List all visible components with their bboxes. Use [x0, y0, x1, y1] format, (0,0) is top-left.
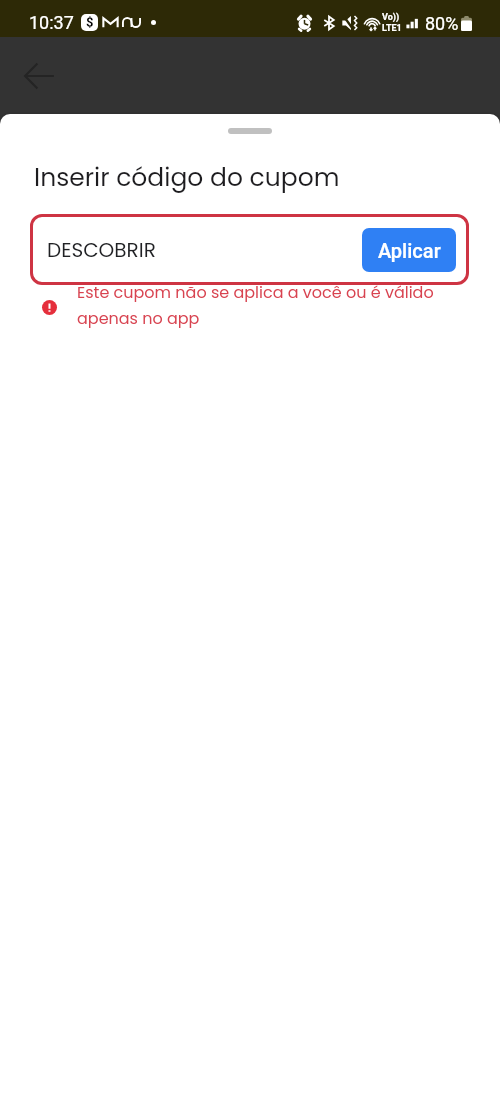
staticText: Inserir código do cupom — [34, 160, 340, 195]
staticText: $ — [86, 15, 94, 30]
staticText: 80% — [425, 13, 459, 34]
button[interactable]: Aplicar — [362, 228, 456, 272]
staticText: Vo)) — [382, 12, 400, 23]
staticText: Aplicar — [378, 239, 441, 262]
button[interactable]: Back — [14, 51, 64, 101]
staticText: 10:37 — [29, 12, 74, 33]
staticText: DESCOBRIR — [47, 236, 156, 264]
staticText: Este cupom não se aplica a você ou é vál… — [77, 279, 478, 331]
staticText: LTE1 — [382, 23, 402, 34]
